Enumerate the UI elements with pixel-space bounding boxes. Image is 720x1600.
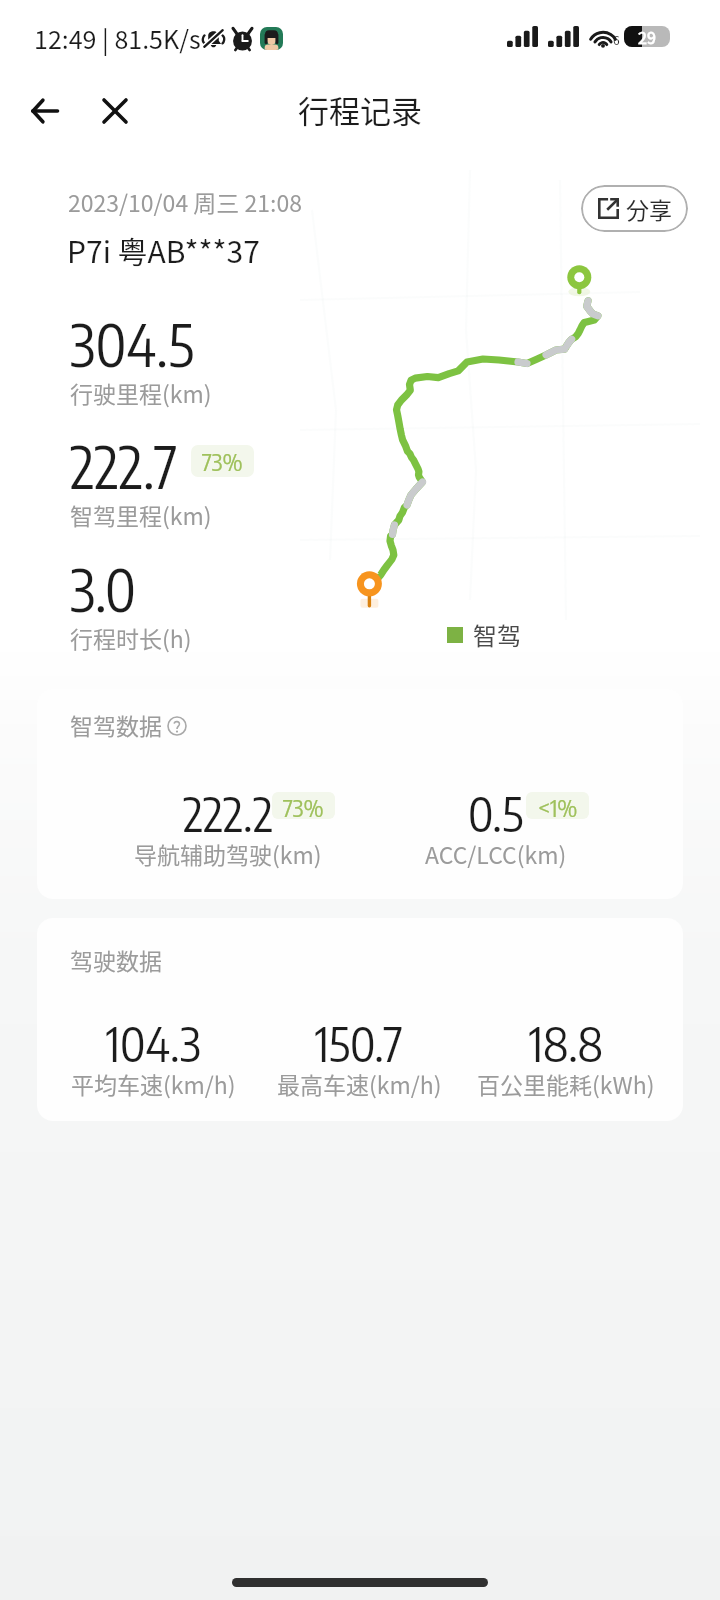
staticText: 智驾数据 (70, 708, 162, 741)
staticText: <1% (538, 792, 578, 819)
staticText: 百公里能耗(kWh) (477, 1067, 655, 1100)
button[interactable]: 分享 (581, 185, 688, 232)
staticText: 150.7 (315, 1014, 403, 1073)
staticText: 304.5 (70, 308, 195, 379)
staticText: 3.0 (70, 553, 137, 624)
button[interactable]: Close (81, 77, 148, 144)
staticText: 6 (613, 31, 620, 48)
staticText: 222.7 (70, 430, 178, 501)
staticText: 平均车速(km/h) (71, 1067, 236, 1100)
staticText: 0.5 (468, 784, 524, 843)
staticText: 导航辅助驾驶(km) (134, 837, 322, 870)
staticText: 29 (638, 26, 656, 46)
staticText: ACC/LCC(km) (425, 837, 567, 870)
staticText: 18.8 (529, 1014, 604, 1073)
staticText: 智驾 (473, 617, 521, 652)
staticText: 2023/10/04 周三 21:08 (68, 185, 302, 218)
staticText: 行程时长(h) (70, 621, 192, 654)
staticText: 行程记录 (298, 87, 422, 132)
staticText: 分享 (626, 192, 672, 225)
staticText: P7i 粤AB***37 (67, 228, 260, 271)
staticText: 驾驶数据 (70, 943, 162, 976)
staticText: 73% (202, 446, 243, 476)
staticText: 222.2 (183, 784, 274, 843)
staticText: 行驶里程(km) (70, 376, 212, 409)
staticText: 104.3 (106, 1014, 201, 1073)
staticText: 最高车速(km/h) (277, 1067, 442, 1100)
button[interactable]: Back (11, 77, 78, 144)
staticText: 智驾里程(km) (70, 498, 212, 531)
staticText: 12:49 | 81.5K/s (34, 20, 201, 56)
staticText: 73% (283, 792, 324, 819)
